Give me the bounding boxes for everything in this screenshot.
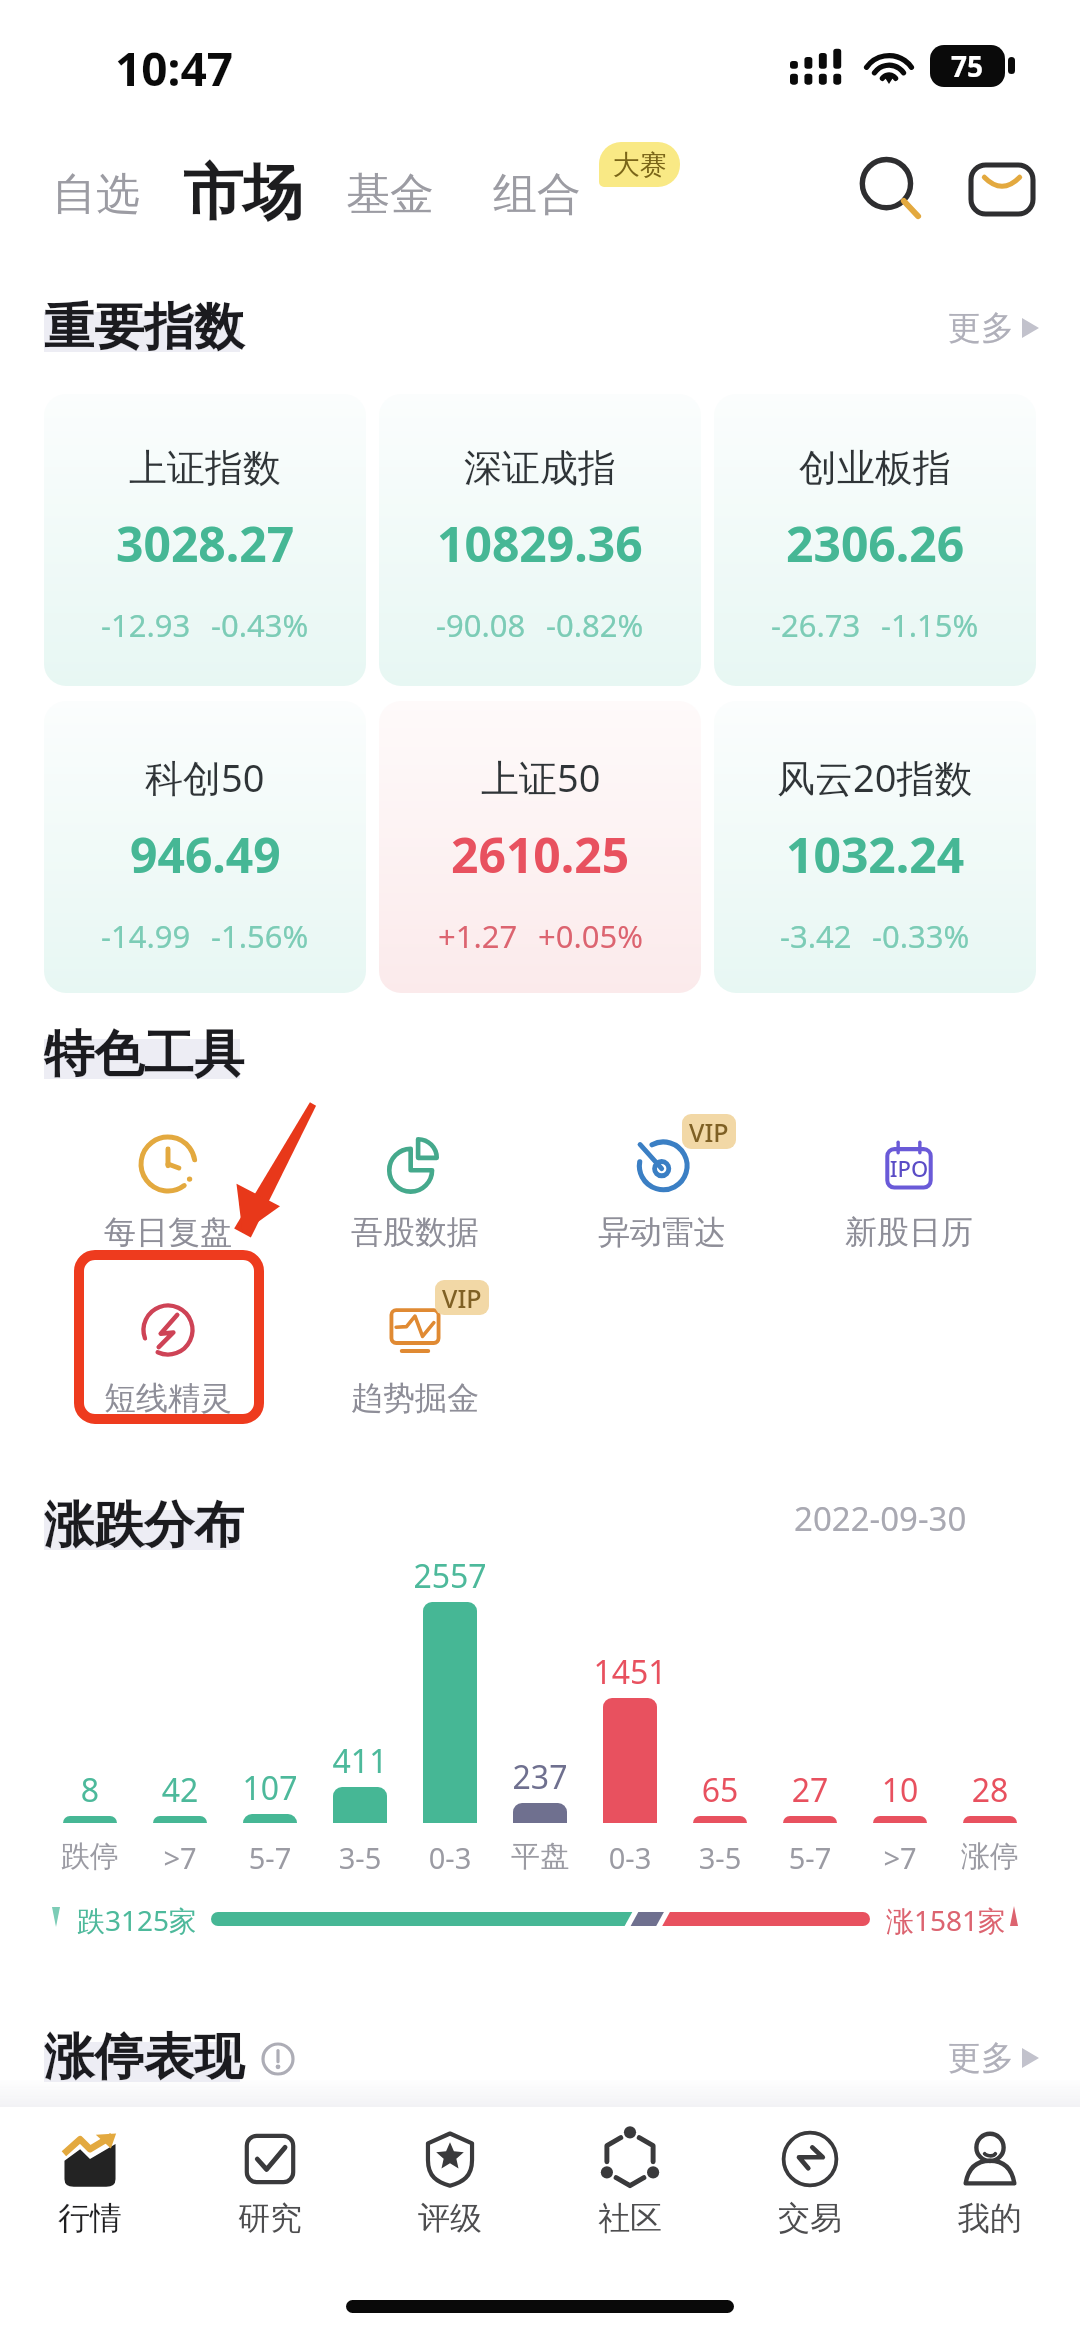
staticText: 更多 [948,2037,1014,2079]
staticText: 基金 [346,167,434,222]
button[interactable]: 短线精灵 [73,1301,263,1427]
staticText: VIP [442,1281,482,1315]
staticText: 涨跌分布 [44,1494,244,1557]
staticText: -0.82% [546,604,644,646]
button[interactable]: 大赛 [599,142,680,187]
staticText: 每日复盘 [73,1212,263,1252]
staticText: 涨停表现 [44,2026,244,2089]
staticText: 411 [315,1739,405,1783]
staticText: 0-3 [585,1838,675,1877]
staticText: >7 [855,1838,945,1877]
button[interactable]: 交易 [720,2118,900,2246]
staticText: 1032.24 [786,822,965,887]
button[interactable]: 上证指数 [44,394,366,686]
staticText: -0.33% [872,915,970,957]
button[interactable]: 组合 [481,161,593,228]
button[interactable]: 市场 [171,149,315,237]
staticText: 42 [135,1768,225,1812]
staticText: -26.73 [771,604,861,646]
staticText: 市场 [183,155,303,231]
staticText: 946.49 [130,822,281,887]
staticText: 237 [495,1755,585,1799]
staticText: -12.93 [101,604,191,646]
staticText: 8 [45,1768,135,1812]
staticText: 评级 [360,2198,540,2238]
staticText: 0-3 [405,1838,495,1877]
staticText: 平盘 [495,1838,585,1875]
staticText: 10:47 [115,37,234,100]
button[interactable]: Search [852,147,936,231]
staticText: 10829.36 [437,511,643,576]
staticText: 重要指数 [44,296,244,359]
button[interactable]: 创业板指 [714,394,1036,686]
staticText: 2610.25 [451,822,630,887]
button[interactable]: 研究 [180,2118,360,2246]
staticText: 交易 [720,2198,900,2238]
staticText: -1.56% [211,915,309,957]
button[interactable]: 行情 [0,2118,180,2246]
staticText: 深证成指 [464,444,616,492]
button[interactable]: 深证成指 [379,394,701,686]
staticText: +0.05% [538,915,643,957]
staticText: -3.42 [780,915,852,957]
staticText: 我的 [900,2198,1080,2238]
staticText: 风云20指数 [777,751,973,803]
staticText: 5-7 [765,1838,855,1877]
staticText: 1451 [585,1650,675,1694]
button[interactable]: 科创50 [44,701,366,993]
staticText: 75 [951,47,984,85]
staticText: IPO [859,1153,959,1183]
staticText: 研究 [180,2198,360,2238]
button[interactable]: 新股日历 [814,1135,1004,1261]
staticText: >7 [135,1838,225,1877]
staticText: 跌3125家 [77,1901,198,1939]
button[interactable]: 更多 [948,307,1039,349]
staticText: 上证50 [481,751,601,803]
staticText: 5-7 [225,1838,315,1877]
staticText: VIP [689,1115,729,1149]
staticText: +1.27 [438,915,518,957]
staticText: 2306.26 [786,511,965,576]
staticText: -1.15% [881,604,979,646]
button[interactable]: 社区 [540,2118,720,2246]
staticText: 异动雷达 [567,1212,757,1252]
staticText: 社区 [540,2198,720,2238]
button[interactable]: 我的 [900,2118,1080,2246]
button[interactable]: 趋势掘金 [320,1301,510,1427]
button[interactable]: 异动雷达 [567,1135,757,1261]
staticText: 2557 [405,1554,495,1598]
staticText: 科创50 [145,751,265,803]
staticText: 10 [855,1768,945,1812]
staticText: 吾股数据 [320,1212,510,1252]
staticText: 组合 [493,167,581,222]
staticText: -14.99 [101,915,191,957]
staticText: 2022-09-30 [794,1496,967,1541]
button[interactable]: 自选 [40,161,152,228]
staticText: 上证指数 [129,444,281,492]
button[interactable]: Messages [962,149,1042,229]
staticText: 3028.27 [116,511,295,576]
staticText: 3-5 [675,1838,765,1877]
button[interactable]: 风云20指数 [714,701,1036,993]
button[interactable]: 每日复盘 [73,1135,263,1261]
staticText: 行情 [0,2198,180,2238]
button[interactable]: 更多 [948,2037,1039,2079]
staticText: 大赛 [613,148,667,182]
staticText: 27 [765,1768,855,1812]
staticText: 特色工具 [44,1023,244,1086]
staticText: 涨停 [945,1838,1035,1875]
staticText: 28 [945,1768,1035,1812]
button[interactable]: 基金 [334,161,446,228]
staticText: 65 [675,1768,765,1812]
button[interactable]: 评级 [360,2118,540,2246]
staticText: -0.43% [211,604,309,646]
button[interactable]: 吾股数据 [320,1135,510,1261]
staticText: 自选 [52,167,140,222]
staticText: 涨1581家 [886,1901,1007,1939]
staticText: 3-5 [315,1838,405,1877]
staticText: 新股日历 [814,1212,1004,1252]
staticText: 跌停 [45,1838,135,1875]
button[interactable]: 上证50 [379,701,701,993]
staticText: 107 [225,1766,315,1810]
staticText: 趋势掘金 [320,1378,510,1418]
